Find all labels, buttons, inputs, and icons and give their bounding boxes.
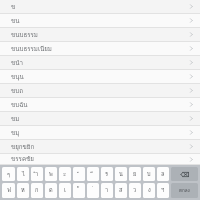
button[interactable]: ตกลง: [171, 183, 198, 198]
staticText: ขมุ: [11, 128, 189, 138]
button[interactable]: ขนบธรรมเนียม: [0, 42, 200, 56]
staticText: ะ: [63, 170, 67, 179]
button[interactable]: ่: [87, 183, 99, 198]
staticText: ฯ: [161, 186, 165, 195]
staticText: ข: [11, 2, 189, 12]
staticText: ขยุกขยิก: [11, 142, 189, 152]
button[interactable]: ร: [101, 167, 113, 181]
button[interactable]: ขนบธรรม: [0, 28, 200, 42]
staticText: ขบถ: [11, 86, 189, 96]
staticText: ขรรคชัย: [11, 154, 189, 164]
staticText: ร: [105, 170, 109, 179]
staticText: ก: [35, 186, 39, 195]
staticText: ขนำ: [11, 58, 189, 68]
button[interactable]: ง: [143, 183, 155, 198]
button[interactable]: ล: [157, 167, 169, 181]
staticText: ไ: [22, 170, 25, 179]
button[interactable]: ขนุน: [0, 70, 200, 84]
staticText: ย: [133, 170, 137, 179]
button[interactable]: ย: [129, 167, 141, 181]
staticText: ว: [133, 186, 137, 195]
button[interactable]: ำ: [31, 167, 43, 181]
staticText: ง: [148, 186, 151, 195]
button[interactable]: เ: [59, 183, 71, 198]
button[interactable]: ้: [73, 183, 85, 198]
staticText: ตกลง: [179, 187, 190, 194]
button[interactable]: ี: [87, 167, 99, 181]
staticText: น: [119, 170, 123, 179]
button[interactable]: ขน: [0, 14, 200, 28]
button[interactable]: ั: [73, 167, 85, 181]
staticText: ขนบธรรม: [11, 30, 189, 40]
button[interactable]: Backspace: [171, 167, 198, 181]
button[interactable]: ขบฉัน: [0, 98, 200, 112]
staticText: ล: [161, 170, 165, 179]
staticText: า: [105, 186, 109, 195]
staticText: ขนุน: [11, 72, 189, 82]
button[interactable]: ขมุ: [0, 126, 200, 140]
staticText: ขบฉัน: [11, 100, 189, 110]
staticText: บ: [147, 170, 151, 179]
staticText: ๆ: [7, 170, 11, 179]
staticText: ฟ: [7, 186, 11, 195]
staticText: ขม: [11, 114, 189, 124]
button[interactable]: ๆ: [2, 167, 15, 181]
staticText: ขน: [11, 16, 189, 26]
button[interactable]: ฟ: [2, 183, 15, 198]
button[interactable]: ด: [45, 183, 57, 198]
button[interactable]: ข: [0, 0, 200, 14]
staticText: พ: [49, 170, 53, 179]
button[interactable]: ไ: [17, 167, 29, 181]
staticText: ส: [119, 186, 123, 195]
button[interactable]: ขม: [0, 112, 200, 126]
button[interactable]: ขนำ: [0, 56, 200, 70]
staticText: ำ: [35, 170, 39, 179]
button[interactable]: ขรรคชัย: [0, 154, 200, 165]
staticText: เ: [64, 186, 66, 195]
button[interactable]: ส: [115, 183, 127, 198]
button[interactable]: ฯ: [157, 183, 169, 198]
button[interactable]: ห: [17, 183, 29, 198]
button[interactable]: ขยุกขยิก: [0, 140, 200, 154]
button[interactable]: ขบถ: [0, 84, 200, 98]
staticText: ขนบธรรมเนียม: [11, 44, 189, 54]
staticText: ห: [21, 186, 25, 195]
button[interactable]: พ: [45, 167, 57, 181]
button[interactable]: บ: [143, 167, 155, 181]
button[interactable]: ะ: [59, 167, 71, 181]
button[interactable]: า: [101, 183, 113, 198]
button[interactable]: ก: [31, 183, 43, 198]
button[interactable]: น: [115, 167, 127, 181]
staticText: ด: [49, 186, 53, 195]
button[interactable]: ว: [129, 183, 141, 198]
